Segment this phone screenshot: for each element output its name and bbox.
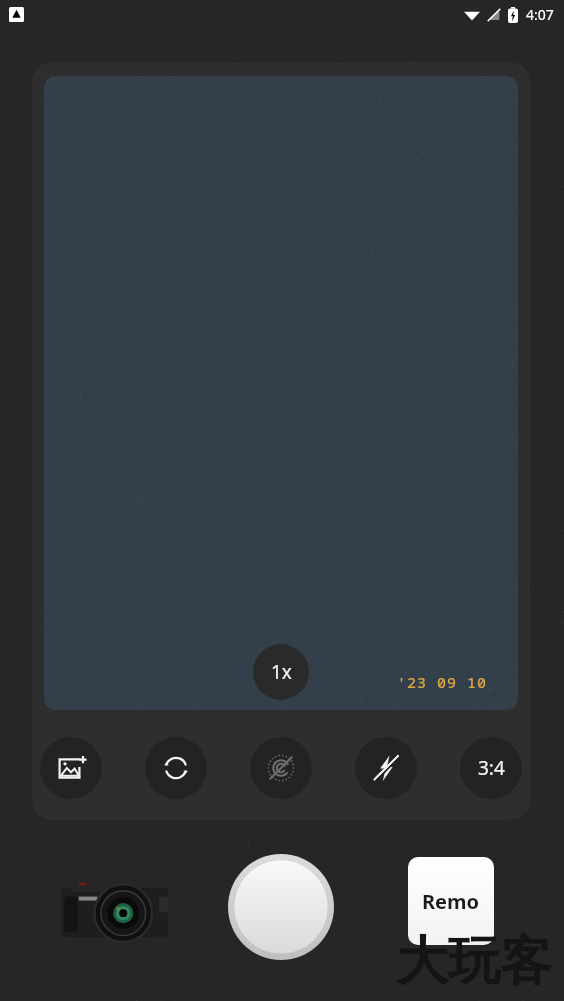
button[interactable]: Connected camera [60,875,170,947]
button[interactable]: Switch camera [145,737,207,799]
staticText: 1x [271,659,292,685]
button[interactable]: Remo [408,857,494,945]
button[interactable]: 3:4 [460,737,522,799]
button[interactable]: Bokeh off [250,737,312,799]
button[interactable]: Flash off [355,737,417,799]
staticText: '23 09 10 [397,672,488,692]
staticText: 3:4 [478,755,505,781]
staticText: Remo [422,888,480,915]
staticText: 4:07 [526,5,554,24]
staticText: 大玩客 [396,929,552,995]
button[interactable]: Add photo [40,737,102,799]
button[interactable]: Shutter [228,854,334,960]
button[interactable]: 1x [253,644,309,700]
